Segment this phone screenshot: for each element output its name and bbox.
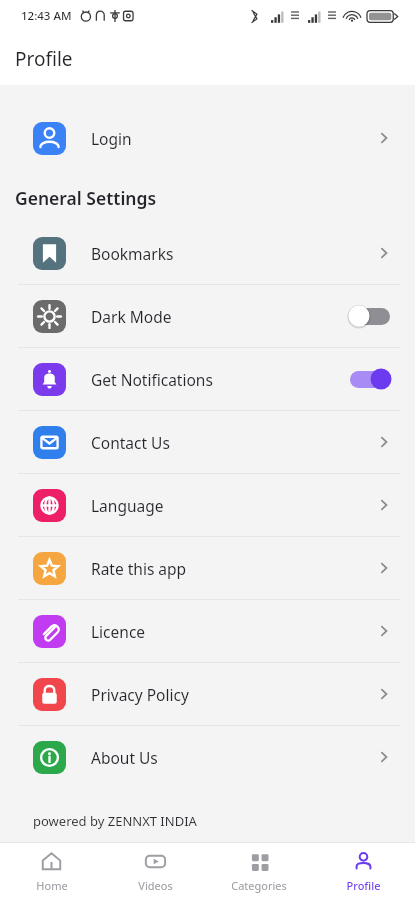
staticText: Dark Mode xyxy=(91,306,172,327)
button[interactable]: Language xyxy=(0,474,415,536)
staticText: Profile xyxy=(346,878,381,893)
button[interactable]: Licence xyxy=(0,600,415,662)
staticText: powered by ZENNXT INDIA xyxy=(33,812,197,830)
staticText: Licence xyxy=(91,621,146,642)
button[interactable]: Videos xyxy=(103,843,207,900)
button[interactable]: Dark Mode xyxy=(0,285,415,347)
staticText: 12:43 AM xyxy=(21,8,72,24)
staticText: Privacy Policy xyxy=(91,684,189,705)
button[interactable]: Rate this app xyxy=(0,537,415,599)
staticText: Language xyxy=(91,495,164,516)
staticText: Bookmarks xyxy=(91,243,174,264)
staticText: Rate this app xyxy=(91,558,187,579)
button[interactable]: Home xyxy=(0,843,103,900)
staticText: Contact Us xyxy=(91,432,170,453)
staticText: Categories xyxy=(231,878,287,893)
button[interactable]: Privacy Policy xyxy=(0,663,415,725)
button[interactable]: Contact Us xyxy=(0,411,415,473)
staticText: About Us xyxy=(91,747,158,768)
button[interactable]: About Us xyxy=(0,726,415,788)
button[interactable]: Toggle off xyxy=(347,303,393,329)
staticText: Login xyxy=(91,128,132,149)
staticText: Profile xyxy=(15,46,73,72)
button[interactable]: Profile xyxy=(311,843,415,900)
staticText: Videos xyxy=(138,878,173,893)
staticText: Get Notifications xyxy=(91,369,213,390)
button[interactable]: Bookmarks xyxy=(0,222,415,284)
button[interactable]: Login xyxy=(0,107,415,169)
staticText: Home xyxy=(36,878,68,893)
staticText: General Settings xyxy=(15,186,157,210)
button[interactable]: Categories xyxy=(207,843,311,900)
button[interactable]: Get Notifications xyxy=(0,348,415,410)
button[interactable]: Toggle on xyxy=(347,366,393,392)
